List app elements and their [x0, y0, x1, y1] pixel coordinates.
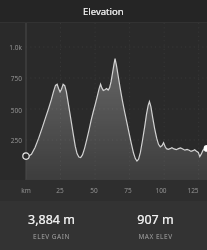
staticText: 750	[10, 74, 22, 83]
button[interactable]: 3,884 m	[0, 201, 103, 250]
staticText: 500	[10, 106, 22, 115]
staticText: 50	[90, 186, 98, 195]
staticText: 25	[56, 186, 64, 195]
staticText: 250	[10, 136, 22, 145]
staticText: ELEV GAIN	[33, 232, 70, 241]
staticText: MAX ELEV	[138, 232, 173, 241]
staticText: 1.0k	[9, 43, 22, 52]
staticText: 75	[124, 186, 132, 195]
staticText: 125	[187, 186, 199, 195]
staticText: 100	[155, 186, 167, 195]
staticText: 3,884 m	[28, 211, 75, 228]
button[interactable]: Elevation profile chart	[0, 23, 207, 180]
staticText: km	[21, 186, 31, 195]
button[interactable]: 907 m	[103, 201, 207, 250]
staticText: 907 m	[137, 211, 174, 228]
staticText: Elevation	[83, 5, 124, 18]
